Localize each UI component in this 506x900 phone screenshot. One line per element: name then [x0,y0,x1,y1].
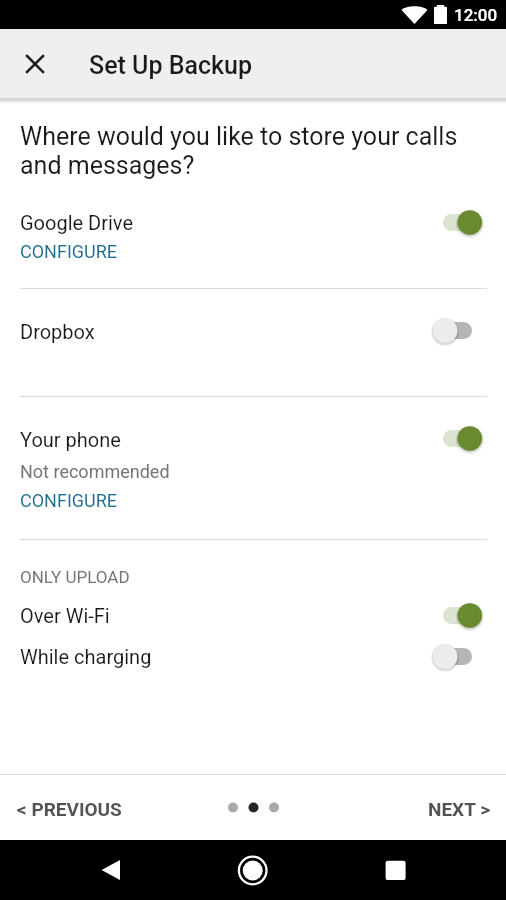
staticText: CONFIGURE [20,490,118,511]
button[interactable]: Google Drive [0,207,506,237]
button[interactable]: Your phone [0,424,506,454]
staticText: < PREVIOUS [17,798,122,820]
staticText: Dropbox [20,320,95,343]
button[interactable]: NEXT > [413,775,505,840]
button[interactable]: While charging [0,641,506,671]
button[interactable]: Recents [368,840,424,900]
staticText: Where would you like to store your calls… [20,122,458,180]
staticText: 12:00 [454,5,498,25]
button[interactable]: Switch off [430,318,490,350]
button[interactable]: Dropbox [0,316,506,346]
button[interactable]: Switch on [430,603,490,635]
button[interactable]: Over Wi-Fi [0,600,506,630]
staticText: CONFIGURE [20,241,118,262]
button[interactable]: Switch off [430,644,490,676]
button[interactable]: Back [83,840,139,900]
button[interactable]: Close [10,29,59,97]
staticText: Not recommended [20,461,170,482]
staticText: ONLY UPLOAD [20,567,130,587]
button[interactable]: Switch on [430,210,490,242]
staticText: NEXT > [428,798,490,820]
staticText: Set Up Backup [89,51,252,80]
staticText: Over Wi-Fi [20,604,110,627]
button[interactable]: < PREVIOUS [2,775,137,840]
staticText: Your phone [20,428,121,451]
staticText: Google Drive [20,211,134,234]
button[interactable]: CONFIGURE [20,490,118,511]
button[interactable]: CONFIGURE [20,241,118,262]
button[interactable]: Switch on [430,426,490,458]
staticText: While charging [20,645,152,668]
button[interactable]: Home [225,840,281,900]
